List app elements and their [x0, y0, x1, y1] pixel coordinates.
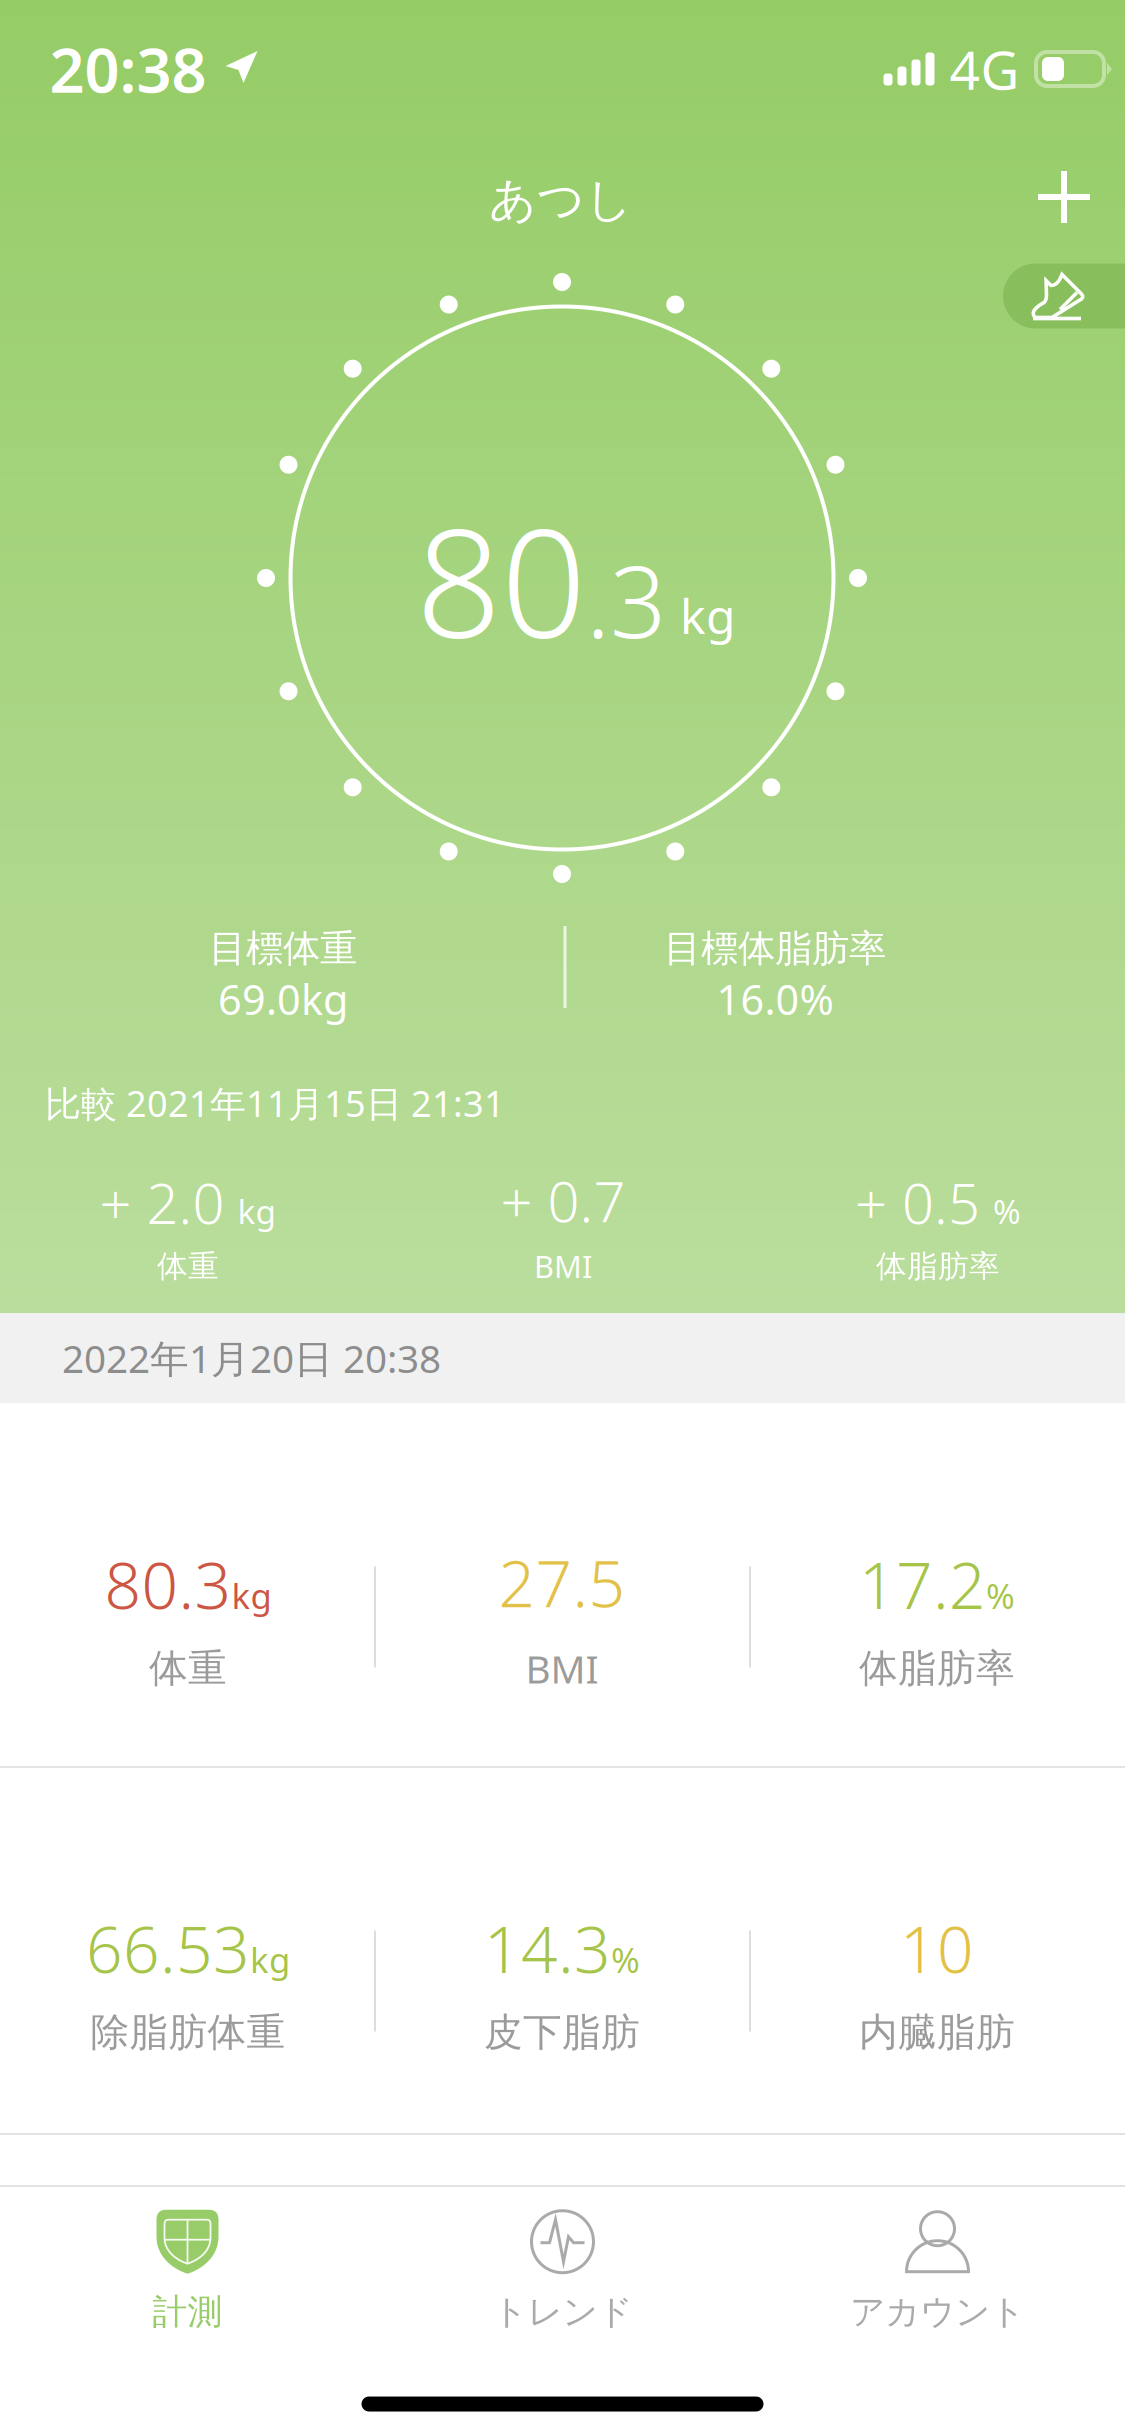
staticText: 目標体重 [209, 926, 357, 971]
staticText: 体重 [157, 1247, 219, 1285]
staticText: 80 [416, 481, 586, 679]
staticText: 2022年1月20日 20:38 [62, 1332, 441, 1384]
staticText: 体脂肪率 [876, 1247, 1000, 1285]
staticText: 27.5 [498, 1540, 625, 1625]
staticText: BMI [525, 1643, 598, 1694]
staticText: 比較 2021年11月15日 21:31 [45, 1079, 505, 1127]
staticText: 17.2 [859, 1542, 986, 1627]
staticText: あつし [489, 171, 633, 229]
staticText: 体脂肪率 [859, 1645, 1015, 1692]
button[interactable]: 計測 [0, 2196, 375, 2346]
staticText: % [986, 1573, 1015, 1619]
staticText: kg [237, 1189, 276, 1233]
staticText: 皮下脂肪 [484, 2009, 640, 2056]
staticText: + 0.7 [500, 1163, 625, 1238]
staticText: 80.3 [104, 1542, 231, 1627]
staticText: トレンド [492, 2291, 632, 2333]
staticText: 計測 [152, 2291, 222, 2333]
staticText: + 0.5 [855, 1165, 980, 1239]
staticText: kg [231, 1573, 271, 1619]
staticText: 目標体脂肪率 [664, 926, 886, 971]
staticText: 20:38 [49, 28, 206, 110]
staticText: アカウント [850, 2291, 1025, 2333]
button[interactable]: アカウント [750, 2196, 1125, 2346]
staticText: 4G [949, 34, 1019, 104]
staticText: 69.0kg [218, 971, 348, 1026]
button[interactable]: Activity [1003, 263, 1125, 328]
staticText: 除脂肪体重 [90, 2009, 285, 2056]
staticText: 66.53 [86, 1906, 250, 1991]
staticText: 16.0% [716, 971, 833, 1026]
staticText: kg [680, 583, 736, 647]
staticText: 体重 [149, 1645, 227, 1692]
staticText: % [993, 1189, 1021, 1233]
staticText: 14.3 [484, 1906, 611, 1991]
staticText: BMI [534, 1246, 592, 1286]
button[interactable]: Add [1006, 139, 1122, 255]
button[interactable]: トレンド [375, 2196, 750, 2346]
staticText: + 2.0 [99, 1165, 224, 1239]
staticText: kg [250, 1937, 290, 1983]
staticText: 10 [900, 1906, 974, 1991]
staticText: .3 [586, 534, 666, 665]
staticText: % [611, 1937, 640, 1983]
staticText: 内臓脂肪 [859, 2009, 1015, 2056]
